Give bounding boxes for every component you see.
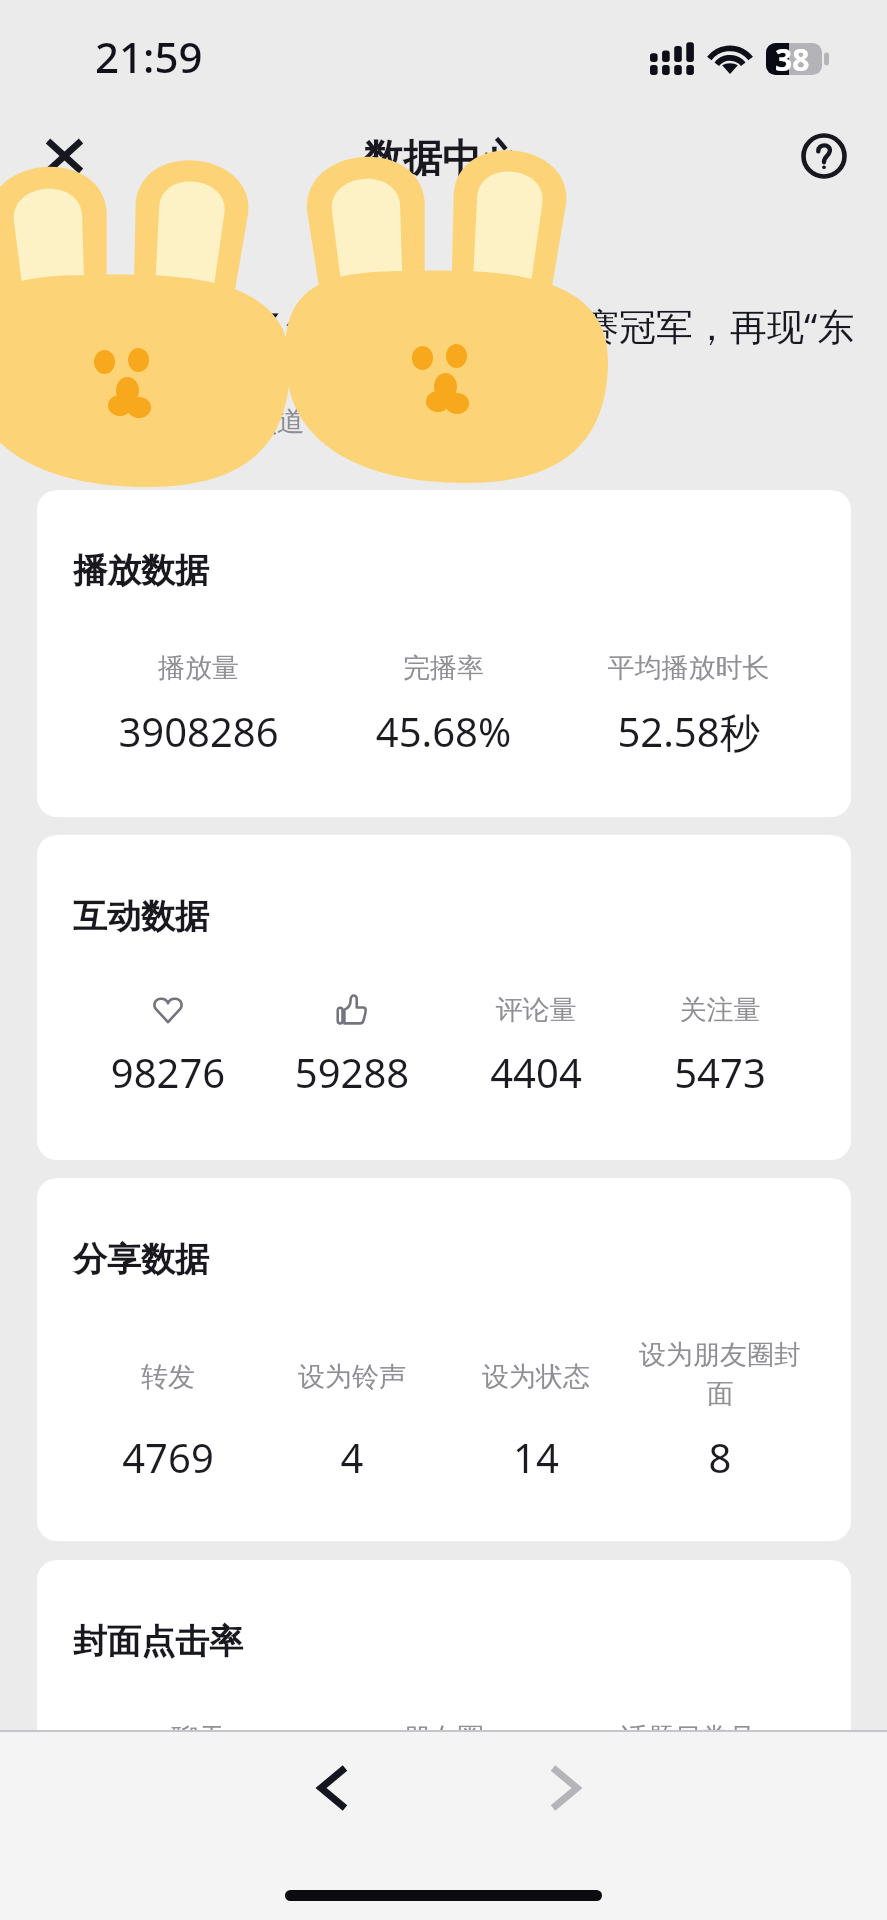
staticText: 丁俊晖的台球频道 · 2024年5月6日 (81, 401, 508, 439)
button[interactable]: Back (277, 1732, 389, 1844)
staticText: 评论量 (444, 993, 628, 1027)
button[interactable]: Close (20, 112, 108, 200)
button[interactable]: 播放数据 (37, 490, 851, 817)
staticText: 4404 (444, 1045, 628, 1099)
staticText: 朋友圈 (321, 1721, 566, 1755)
staticText: 话题日常号 (566, 1721, 811, 1755)
staticText: 3.15% (566, 1774, 811, 1828)
staticText: 5473 (628, 1045, 812, 1099)
button[interactable]: 封面点击率 (37, 1560, 851, 1900)
staticText: 12.50% (76, 1774, 321, 1828)
button[interactable]: 分享数据 (37, 1178, 851, 1541)
staticText: 4 (260, 1430, 444, 1484)
button[interactable]: Help (780, 112, 868, 200)
staticText: 38 (775, 39, 810, 71)
staticText: 14 (444, 1430, 628, 1484)
staticText: 转发 (76, 1360, 260, 1394)
staticText: 45.68% (321, 704, 566, 758)
staticText: 52.58秒 (566, 704, 811, 759)
staticText: 关注量 (628, 993, 812, 1027)
staticText: 聊天 (76, 1721, 321, 1755)
staticText: 平均播放时长 (566, 651, 811, 685)
button[interactable]: 互动数据 (37, 835, 851, 1160)
staticText: 59288 (260, 1045, 444, 1099)
staticText: 98276 (76, 1045, 260, 1099)
staticText: 丁俊晖时隔多年后再度夺得世锦赛冠军，再现“东 (64, 300, 855, 351)
staticText: 8.21% (321, 1774, 566, 1828)
staticText: 播放量 (76, 651, 321, 685)
staticText: 3908286 (76, 704, 321, 758)
staticText: 设为朋友圈封面 (628, 1338, 812, 1411)
staticText: 数据中心 (364, 134, 520, 183)
button[interactable]: Forward (509, 1732, 621, 1844)
staticText: 设为状态 (444, 1360, 628, 1394)
staticText: 播放数据 (73, 549, 209, 592)
staticText: 21:59 (95, 28, 203, 85)
staticText: 完播率 (321, 651, 566, 685)
staticText: 8 (628, 1430, 812, 1484)
staticText: 设为铃声 (260, 1360, 444, 1394)
staticText: 互动数据 (73, 895, 209, 938)
staticText: 4769 (76, 1430, 260, 1484)
staticText: 封面点击率 (73, 1620, 243, 1663)
staticText: 分享数据 (73, 1238, 209, 1281)
